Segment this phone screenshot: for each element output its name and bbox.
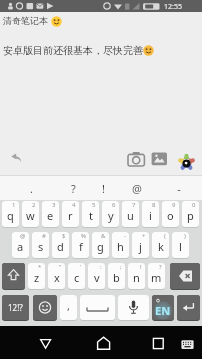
button[interactable]: ? (68, 179, 78, 198)
staticText: 12:55 (164, 2, 182, 12)
button[interactable]: o (162, 201, 179, 227)
staticText: 3 (52, 201, 56, 209)
button[interactable]: b (108, 263, 125, 289)
button[interactable]: g (92, 232, 109, 258)
button[interactable] (37, 335, 54, 352)
button[interactable]: l (172, 232, 189, 258)
staticText: . (30, 181, 33, 196)
button[interactable]: - (174, 179, 184, 198)
button[interactable]: c (68, 263, 85, 289)
button[interactable] (170, 263, 200, 289)
staticText: d (57, 239, 64, 254)
button[interactable] (179, 337, 196, 352)
button[interactable]: a (12, 232, 29, 258)
button[interactable]: f (72, 232, 89, 258)
button[interactable]: e (42, 201, 59, 227)
staticText: u (127, 208, 134, 223)
staticText: ! (140, 263, 142, 271)
button[interactable]: 12!? (2, 295, 29, 320)
staticText: o (167, 208, 174, 223)
button[interactable]: t (82, 201, 99, 227)
staticText: g (97, 239, 104, 254)
staticText: b (113, 270, 120, 285)
staticText: 2 (32, 201, 36, 209)
button[interactable] (118, 295, 149, 320)
button[interactable]: v (88, 263, 105, 289)
button[interactable]: w (22, 201, 39, 227)
staticText: - (177, 181, 181, 196)
button[interactable]: @ (132, 179, 142, 198)
button[interactable] (151, 152, 168, 166)
button[interactable]: h (112, 232, 129, 258)
staticText: i (149, 208, 152, 223)
staticText: * (38, 263, 42, 271)
staticText: k (158, 239, 164, 254)
button[interactable]: q (2, 201, 19, 227)
button[interactable] (33, 295, 57, 320)
staticText: v (94, 270, 100, 285)
staticText: " (59, 263, 62, 271)
staticText: EN (155, 303, 171, 318)
staticText: n (133, 270, 140, 285)
button[interactable]: , (60, 295, 77, 320)
staticText: q (7, 208, 14, 223)
button[interactable]: p (182, 201, 199, 227)
staticText: f (79, 239, 83, 254)
button[interactable] (2, 263, 25, 289)
staticText: h (117, 239, 124, 254)
button[interactable] (176, 152, 197, 173)
button[interactable]: u (122, 201, 139, 227)
button[interactable]: EN (152, 295, 174, 320)
staticText: ; (120, 263, 122, 271)
staticText: 安卓版目前还很基本，尽快完善 (3, 44, 143, 57)
button[interactable]: i (142, 201, 159, 227)
staticText: 9 (172, 201, 176, 209)
staticText: ' (80, 263, 82, 271)
staticText: + (142, 232, 146, 240)
staticText: ) (184, 232, 186, 240)
staticText: 0 (192, 201, 196, 209)
button[interactable]: r (62, 201, 79, 227)
staticText: l (179, 239, 182, 254)
staticText: ( (164, 232, 166, 240)
staticText: 7 (132, 201, 136, 209)
staticText: t (89, 208, 93, 223)
button[interactable] (127, 151, 146, 167)
button[interactable]: m (148, 263, 165, 289)
button[interactable] (177, 295, 200, 320)
button[interactable] (7, 151, 27, 169)
staticText: z (34, 270, 40, 285)
staticText: 8 (152, 201, 156, 209)
button[interactable] (80, 295, 115, 320)
staticText: @ (20, 232, 26, 240)
staticText: y (108, 208, 114, 223)
staticText: % (81, 232, 86, 240)
button[interactable]: d (52, 232, 69, 258)
button[interactable]: x (48, 263, 65, 289)
staticText: 4 (72, 201, 76, 209)
staticText: c (74, 270, 80, 285)
button[interactable]: k (152, 232, 169, 258)
staticText: s (38, 239, 44, 254)
staticText: w (26, 208, 35, 223)
staticText: x (54, 270, 60, 285)
button[interactable] (95, 334, 113, 352)
button[interactable]: . (26, 179, 36, 198)
button[interactable]: ! (98, 179, 108, 198)
button[interactable]: n (128, 263, 145, 289)
staticText: 5 (92, 201, 96, 209)
staticText: ? (159, 263, 162, 271)
staticText: a (17, 239, 24, 254)
button[interactable]: y (102, 201, 119, 227)
button[interactable]: z (28, 263, 45, 289)
button[interactable] (150, 335, 167, 352)
staticText: : (100, 263, 102, 271)
button[interactable]: j (132, 232, 149, 258)
staticText: e (47, 208, 54, 223)
staticText: ? (71, 181, 76, 196)
staticText: 12!? (8, 302, 23, 313)
staticText: j (139, 239, 142, 254)
staticText: 清奇笔记本 (3, 15, 48, 26)
staticText: $ (62, 232, 66, 240)
button[interactable]: s (32, 232, 49, 258)
